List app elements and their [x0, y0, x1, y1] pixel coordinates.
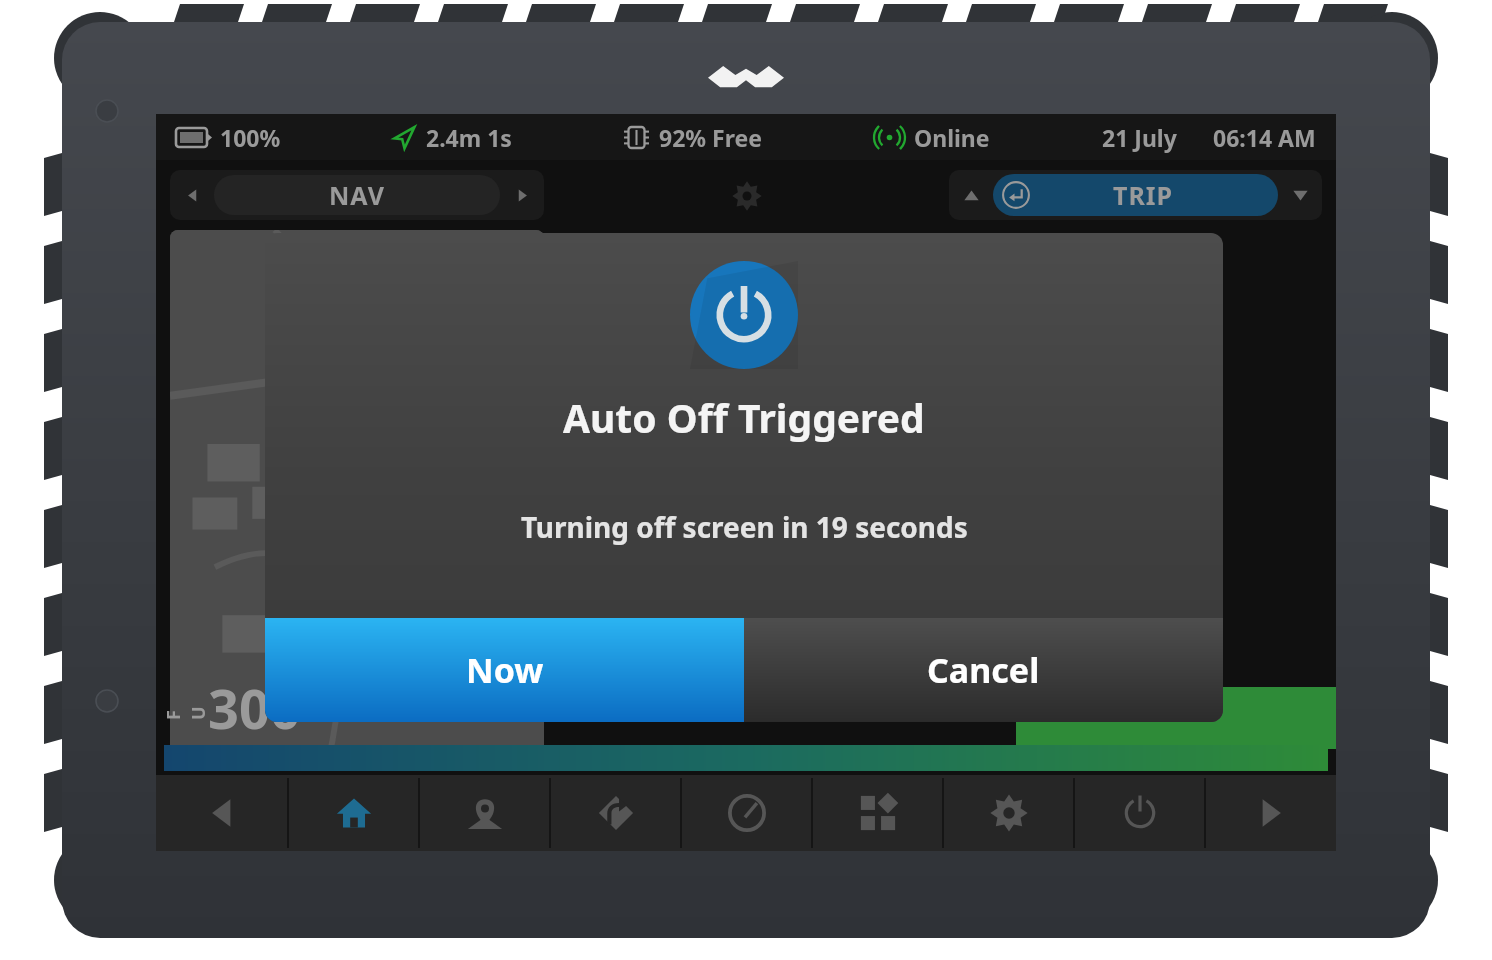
button[interactable]: Apps: [812, 775, 943, 851]
button[interactable]: Up: [949, 173, 993, 217]
button[interactable]: Settings: [943, 775, 1074, 851]
button[interactable]: Directions: [550, 775, 681, 851]
button[interactable]: NAV: [214, 175, 500, 215]
button[interactable]: Now: [265, 618, 744, 722]
staticText: TRIP: [1113, 178, 1174, 212]
staticText: NAV: [329, 178, 385, 212]
staticText: 2.4m 1s: [426, 122, 512, 153]
staticText: 300: [208, 671, 301, 745]
button[interactable]: Forward: [1205, 775, 1336, 851]
staticText: 100%: [220, 122, 281, 153]
staticText: FUEL: [161, 696, 211, 720]
button[interactable]: Next: [500, 173, 544, 217]
staticText: Auto Off Triggered: [563, 391, 925, 444]
button[interactable]: Previous: [170, 173, 214, 217]
button[interactable]: TRIP: [993, 174, 1278, 216]
button[interactable]: Cancel: [744, 618, 1223, 722]
staticText: 92% Free: [659, 122, 762, 153]
button[interactable]: Power: [1074, 775, 1205, 851]
button[interactable]: RESET: [951, 482, 1174, 556]
button[interactable]: Dashboard: [681, 775, 812, 851]
staticText: 06:14 AM: [1213, 122, 1316, 153]
button[interactable]: Down: [1278, 173, 1322, 217]
button[interactable]: Back: [156, 775, 288, 851]
button[interactable]: Settings: [725, 174, 769, 218]
button[interactable]: Places: [419, 775, 550, 851]
staticText: 21 July: [1102, 122, 1177, 153]
staticText: Online: [914, 122, 990, 153]
button[interactable]: Home: [288, 775, 419, 851]
staticText: Cancel: [927, 647, 1040, 693]
staticText: Now: [466, 647, 544, 693]
staticText: Turning off screen in 19 seconds: [521, 508, 968, 546]
